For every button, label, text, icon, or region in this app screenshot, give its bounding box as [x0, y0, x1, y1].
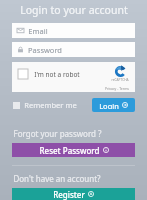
- staticText: Reset Password: [39, 145, 100, 156]
- staticText: Privacy - Terms: [105, 86, 129, 91]
- staticText: reCAPTCHA: [111, 78, 129, 82]
- staticText: Register: [53, 189, 85, 200]
- button[interactable]: Register: [12, 188, 135, 200]
- staticText: Password: [28, 45, 62, 55]
- button[interactable]: Email: [12, 23, 135, 38]
- staticText: Login to your account: [20, 3, 128, 17]
- button[interactable]: Login: [92, 98, 135, 112]
- button[interactable]: Reset Password: [12, 143, 135, 157]
- staticText: Email: [28, 26, 48, 36]
- staticText: I'm not a robot: [34, 70, 80, 79]
- staticText: Don't have an account?: [13, 173, 101, 184]
- button[interactable]: Remember me: [13, 99, 77, 111]
- staticText: Forgot your password ?: [13, 128, 102, 139]
- button[interactable]: I'm not a robot: [12, 62, 135, 92]
- staticText: Login: [99, 101, 119, 109]
- button[interactable]: Password: [12, 42, 135, 57]
- staticText: Remember me: [24, 100, 77, 110]
